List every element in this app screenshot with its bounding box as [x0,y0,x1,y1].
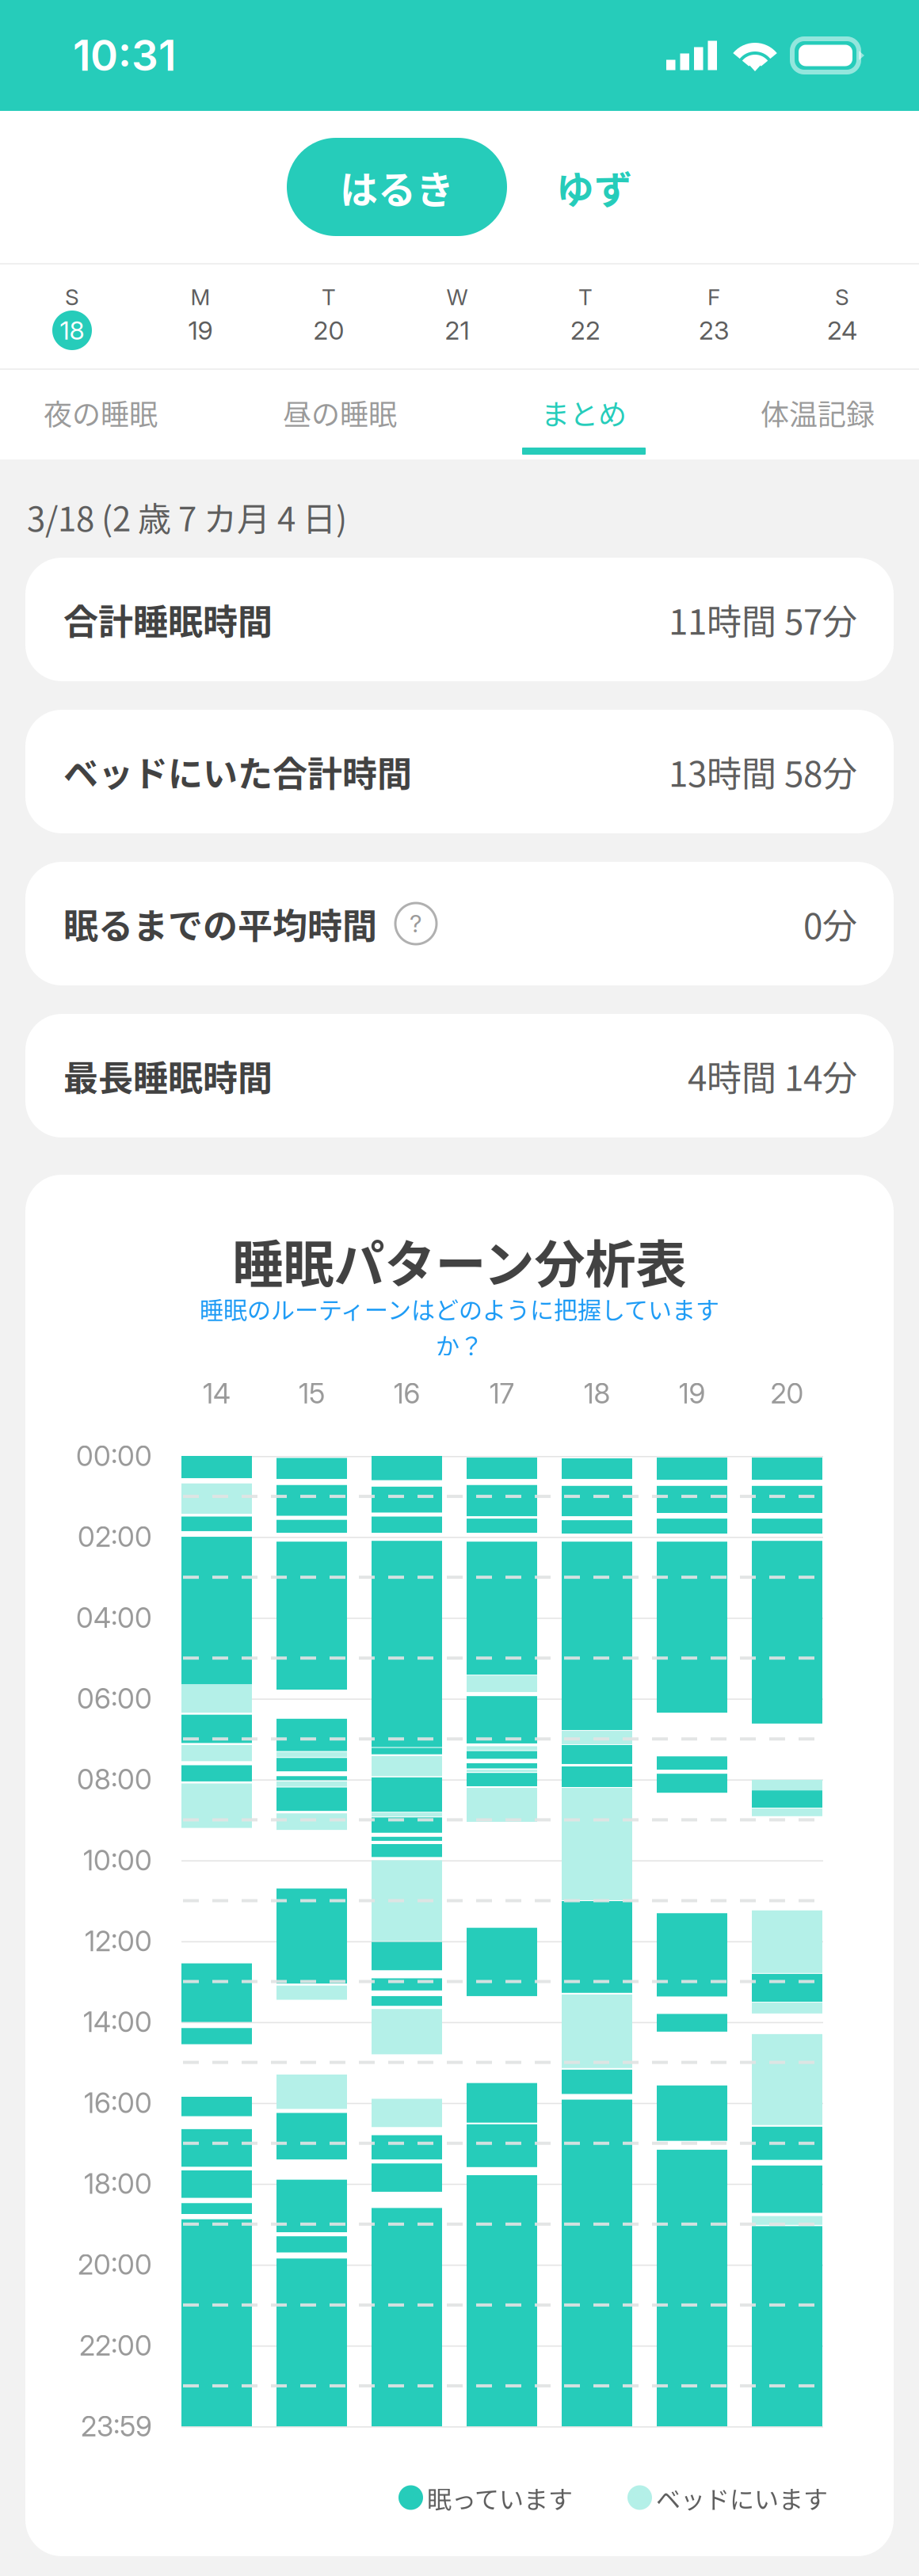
staticText: 最長睡眠時間 [63,1050,273,1101]
staticText: T [322,284,336,311]
staticText: 04:00 [76,1601,152,1634]
button[interactable]: 合計睡眠時間 [25,558,894,681]
staticText: 02:00 [78,1520,152,1554]
staticText: 12:00 [85,1924,152,1958]
staticText: M [191,284,210,311]
button[interactable]: S [795,265,890,368]
staticText: 16:00 [84,2086,152,2120]
staticText: 21 [445,315,469,346]
staticText: 15 [299,1377,325,1410]
staticText: 00:00 [76,1439,152,1473]
staticText: 13時間 58分 [669,746,857,797]
staticText: 11時間 57分 [669,594,857,645]
staticText: 睡眠パターン分析表 [233,1224,686,1297]
staticText: 夜の睡眠 [44,392,158,433]
staticText: 08:00 [77,1763,152,1796]
button[interactable]: S [25,265,120,368]
staticText: S [65,284,79,311]
staticText: 20 [770,1377,804,1410]
staticText: 22:00 [79,2329,152,2362]
button[interactable]: F [666,265,761,368]
staticText: ゆず [556,159,632,214]
staticText: 23 [699,315,729,346]
staticText: 14:00 [83,2005,152,2039]
staticText: 3/18 (2 歳 7 カ月 4 日) [27,493,347,541]
staticText: 06:00 [77,1682,152,1715]
button[interactable]: 最長睡眠時間 [25,1014,894,1137]
staticText: 体温記録 [761,392,875,433]
button[interactable]: ゆず [556,138,632,236]
staticText: 4時間 14分 [688,1050,857,1101]
button[interactable]: ベッドにいた合計時間 [25,710,894,833]
staticText: T [578,284,593,311]
staticText: ベッドにいた合計時間 [63,746,412,797]
staticText: ? [410,909,422,938]
staticText: 合計睡眠時間 [63,594,273,645]
staticText: 10:00 [83,1843,152,1877]
button[interactable]: 体温記録 [703,370,919,459]
staticText: 19 [188,315,213,346]
staticText: 眠るまでの平均時間 [63,898,377,949]
staticText: 10:31 [73,30,176,81]
button[interactable]: 夜の睡眠 [0,370,215,459]
button[interactable]: W [410,265,505,368]
staticText: まとめ [541,392,627,433]
staticText: 17 [489,1377,515,1410]
staticText: 20 [313,315,344,346]
staticText: W [446,284,468,311]
staticText: 18 [583,1377,610,1410]
staticText: 昼の睡眠 [283,392,397,433]
staticText: 23:59 [81,2409,152,2443]
staticText: 14 [203,1377,231,1410]
staticText: 19 [679,1377,705,1410]
staticText: 20:00 [78,2248,152,2281]
button[interactable]: T [281,265,376,368]
button[interactable]: はるき [287,138,507,236]
button[interactable]: M [153,265,248,368]
staticText: 22 [570,315,601,346]
staticText: 16 [393,1377,420,1410]
staticText: 睡眠のルーティーンはどのように把握しています [200,1291,719,1326]
button[interactable]: 眠るまでの平均時間 [25,862,894,985]
staticText: ベッドにいます [656,2480,828,2515]
button[interactable]: 昼の睡眠 [225,370,455,459]
staticText: か？ [436,1327,483,1362]
staticText: 18 [60,315,84,346]
button[interactable]: T [538,265,633,368]
staticText: はるき [340,159,454,214]
staticText: F [707,284,720,311]
staticText: 24 [827,315,857,346]
staticText: S [835,284,849,311]
staticText: 0分 [803,898,857,949]
staticText: 眠っています [427,2480,573,2515]
button[interactable]: まとめ [469,370,699,459]
staticText: 18:00 [84,2167,152,2200]
